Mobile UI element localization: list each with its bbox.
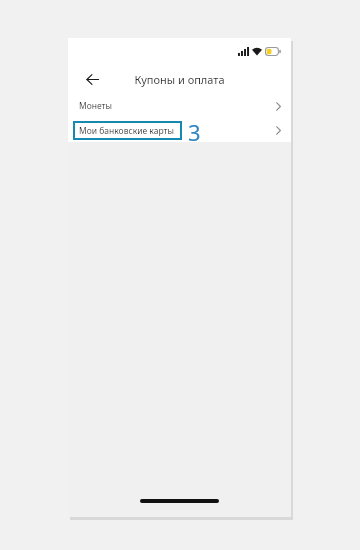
staticText: Мои банковские карты [79,125,174,137]
staticText: 3 [188,117,201,141]
staticText: Купоны и оплата [134,72,225,87]
button[interactable]: Мои банковские карты [68,118,291,142]
staticText: Монеты [79,100,112,112]
button[interactable]: Назад [82,69,102,89]
button[interactable]: Монеты [68,94,291,118]
